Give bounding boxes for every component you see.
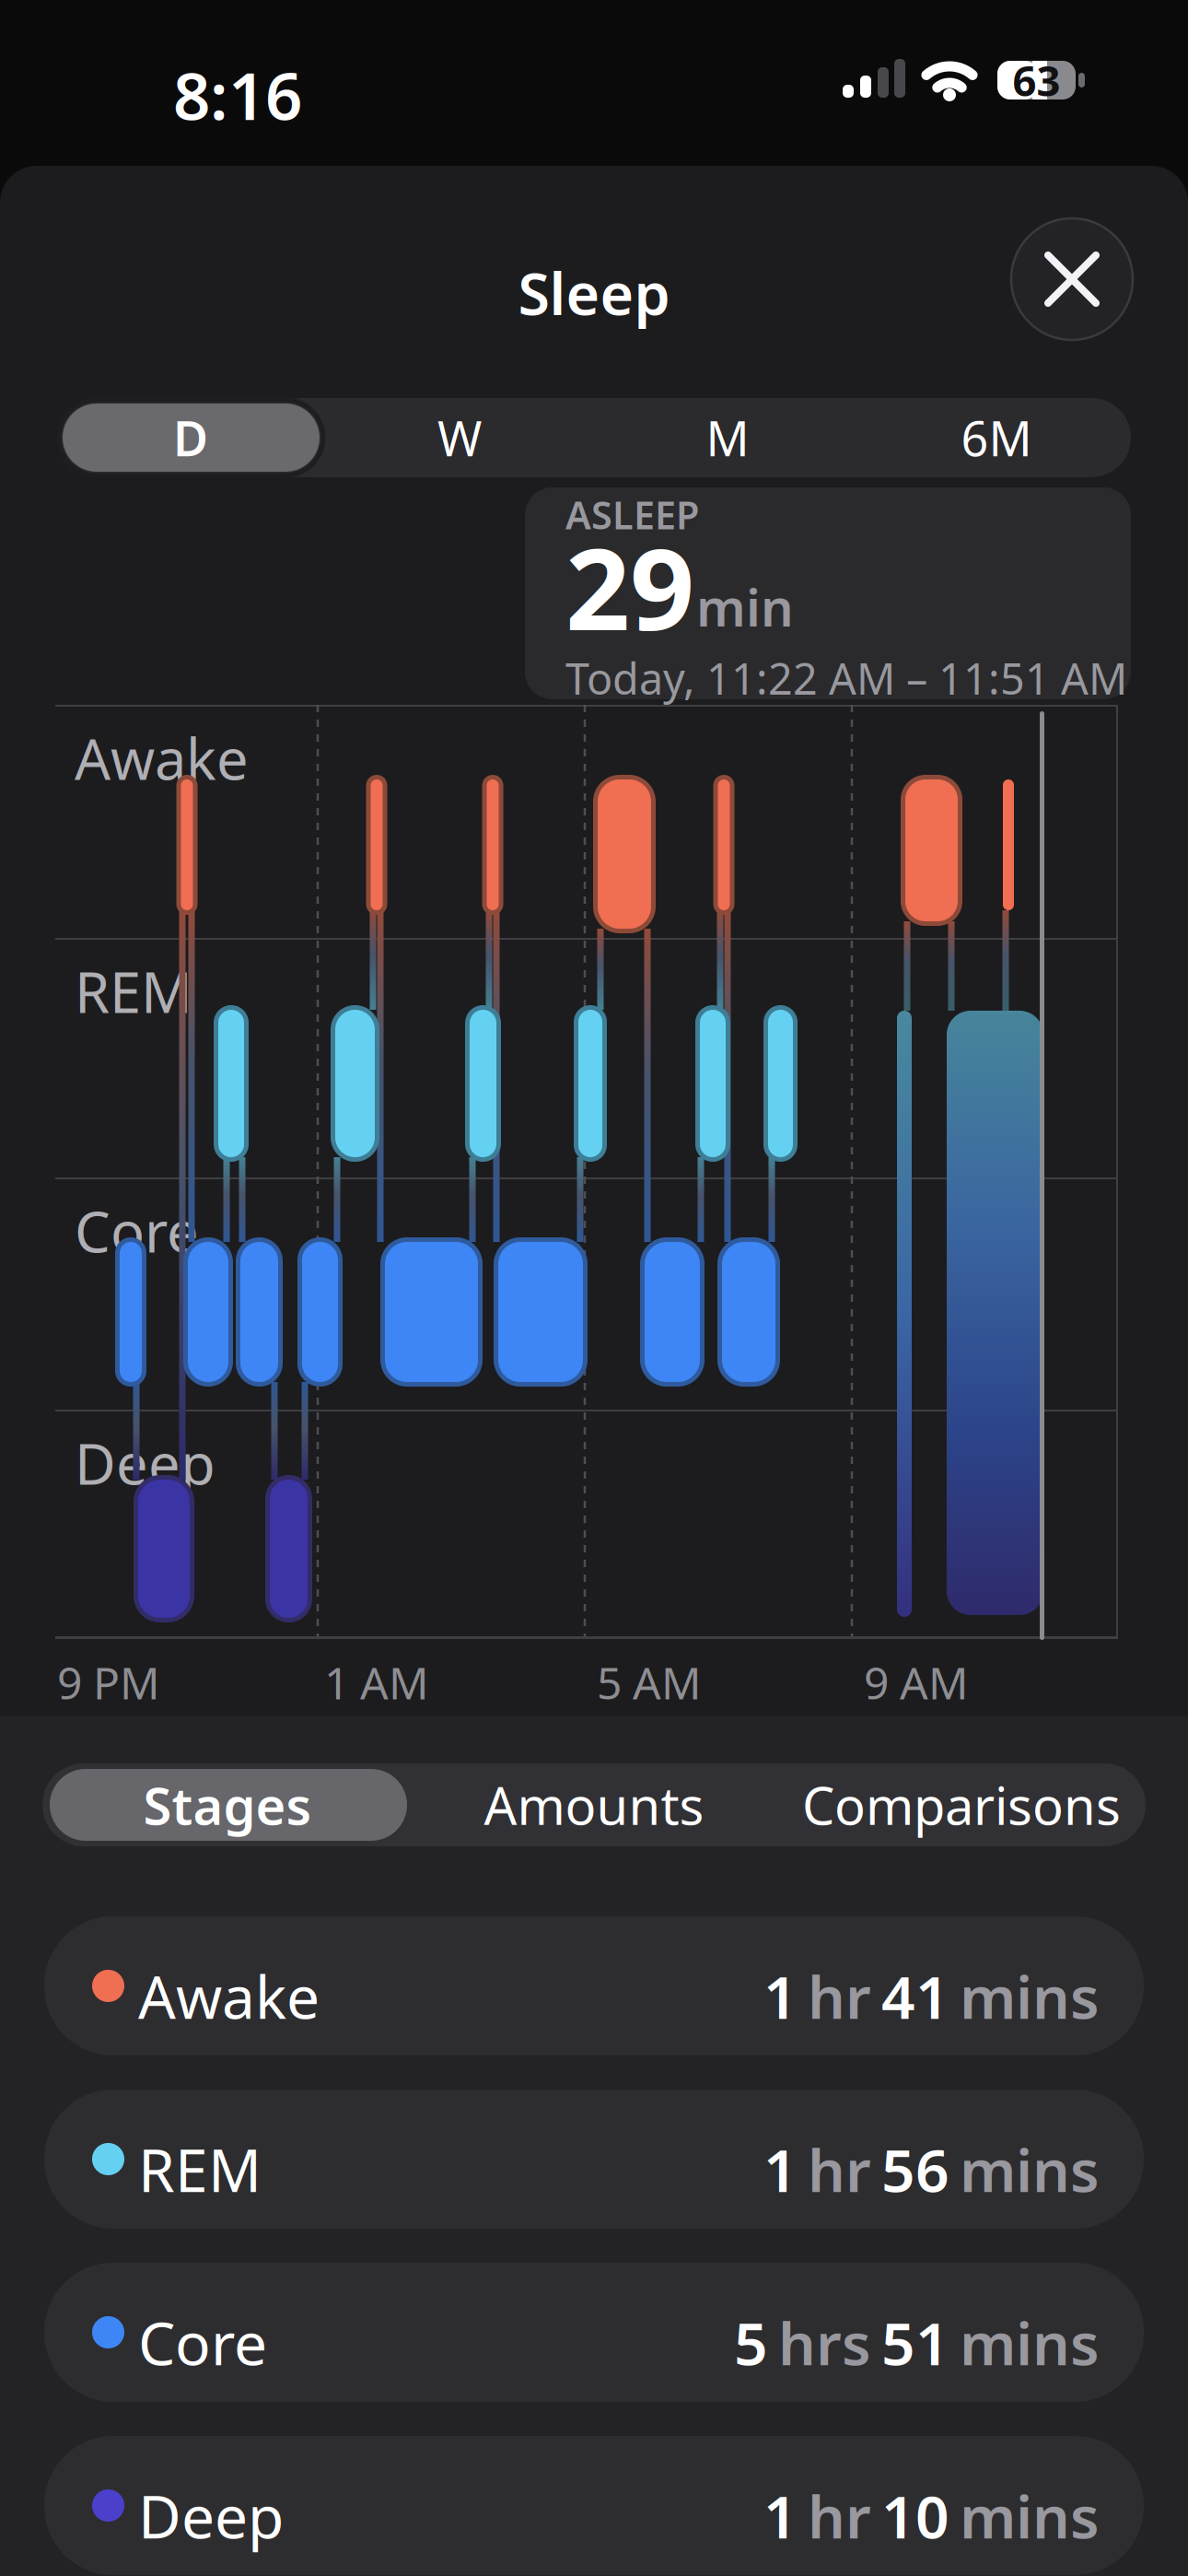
staticText: 1 (763, 1957, 798, 2035)
staticText: 1 (763, 2476, 798, 2555)
staticText: Amounts (484, 1771, 704, 1839)
staticText: Awake (138, 1957, 320, 2035)
staticText: 5 AM (597, 1653, 702, 1712)
staticText: ASLEEP (565, 489, 699, 540)
staticText: 10 (881, 2476, 949, 2555)
staticText: mins (960, 2303, 1100, 2382)
button[interactable]: M (599, 398, 856, 477)
staticText: hr (808, 2130, 871, 2208)
staticText: min (696, 572, 794, 641)
staticText: Deep (75, 1425, 215, 1500)
button[interactable]: Comparisons (779, 1763, 1144, 1846)
staticText: hr (808, 2476, 871, 2555)
staticText: mins (960, 2476, 1100, 2555)
staticText: D (173, 406, 208, 470)
staticText: 5 (734, 2303, 768, 2382)
staticText: Deep (138, 2476, 284, 2555)
staticText: 6M (961, 406, 1032, 470)
staticText: Today, 11:22 AM – 11:51 AM (565, 650, 1127, 707)
staticText: mins (960, 1957, 1100, 2035)
button[interactable]: Close (1011, 218, 1133, 340)
staticText: REM (138, 2130, 262, 2208)
staticText: 51 (881, 2303, 949, 2382)
staticText: M (706, 406, 749, 470)
staticText: 56 (881, 2130, 949, 2208)
staticText: 9 AM (864, 1653, 969, 1712)
button[interactable]: Stages (45, 1763, 410, 1846)
staticText: 1 (763, 2130, 798, 2208)
staticText: 1 AM (324, 1653, 429, 1712)
staticText: Core (75, 1193, 199, 1268)
staticText: Awake (75, 720, 249, 795)
button[interactable]: Amounts (412, 1763, 776, 1846)
staticText: 41 (881, 1957, 949, 2035)
staticText: hr (808, 1957, 871, 2035)
staticText: REM (75, 954, 192, 1029)
button[interactable]: W (331, 398, 588, 477)
staticText: 63 (1013, 52, 1060, 108)
staticText: 9 PM (57, 1653, 160, 1712)
staticText: 29 (565, 511, 694, 661)
staticText: 8:16 (173, 52, 302, 138)
staticText: Core (138, 2303, 267, 2382)
button[interactable]: 6M (868, 398, 1125, 477)
staticText: Comparisons (802, 1771, 1121, 1839)
staticText: hrs (778, 2303, 871, 2382)
staticText: Sleep (518, 254, 670, 331)
button[interactable]: D (62, 398, 320, 477)
staticText: mins (960, 2130, 1100, 2208)
staticText: Stages (143, 1771, 312, 1839)
staticText: W (437, 406, 482, 470)
